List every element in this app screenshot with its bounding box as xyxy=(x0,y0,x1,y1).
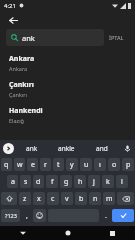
button[interactable]: z xyxy=(19,192,31,205)
button[interactable]: r xyxy=(40,158,51,171)
staticText: u xyxy=(84,160,89,170)
staticText: g xyxy=(64,177,69,187)
staticText: Ankara xyxy=(9,54,35,64)
staticText: Ankara xyxy=(9,65,28,72)
button[interactable]: a xyxy=(7,175,18,188)
staticText: l xyxy=(121,177,123,187)
button[interactable]: ank xyxy=(6,29,104,46)
button[interactable]: p xyxy=(122,158,134,171)
button[interactable]: ?123 xyxy=(1,209,20,222)
staticText: and xyxy=(96,144,108,153)
button[interactable]: e xyxy=(27,158,38,171)
staticText: k xyxy=(106,177,110,187)
button[interactable]: Voice input xyxy=(119,140,135,156)
button[interactable]: b xyxy=(75,192,87,205)
button[interactable]: h xyxy=(74,175,86,188)
button[interactable]: j xyxy=(88,175,100,188)
staticText: . xyxy=(105,211,107,221)
staticText: a xyxy=(11,177,15,187)
button[interactable]: Ankara xyxy=(0,50,135,76)
button[interactable]: Emoji xyxy=(33,209,46,222)
staticText: Hankendi xyxy=(9,106,43,116)
staticText: Çankırı xyxy=(9,91,28,98)
button[interactable]: l xyxy=(116,175,128,188)
staticText: q xyxy=(4,160,9,170)
staticText: r xyxy=(44,160,47,170)
button[interactable]: . xyxy=(101,207,110,224)
button[interactable]: g xyxy=(60,175,72,188)
button[interactable]: ı xyxy=(94,158,106,171)
button[interactable]: x xyxy=(33,192,45,205)
button[interactable]: m xyxy=(103,192,115,205)
staticText: e xyxy=(31,160,35,170)
button[interactable]: İPTAL xyxy=(104,30,129,45)
staticText: ankle xyxy=(58,144,75,153)
staticText: 4:21 xyxy=(4,2,16,10)
button[interactable]: Hankendi xyxy=(0,102,135,128)
button[interactable]: v xyxy=(61,192,73,205)
button[interactable]: o xyxy=(108,158,120,171)
button[interactable]: w xyxy=(14,158,25,171)
staticText: ı xyxy=(99,160,101,170)
button[interactable]: Backspace xyxy=(117,192,134,205)
staticText: Elazığ xyxy=(9,117,24,124)
staticText: Çankırı xyxy=(9,80,34,90)
button[interactable]: Home xyxy=(45,226,90,240)
button[interactable]: q xyxy=(1,158,12,171)
button[interactable]: d xyxy=(33,175,44,188)
button[interactable]: c xyxy=(47,192,59,205)
button[interactable]: Recents xyxy=(90,226,135,240)
staticText: d xyxy=(36,177,41,187)
button[interactable]: ankle xyxy=(49,140,84,156)
button[interactable]: k xyxy=(102,175,114,188)
staticText: z xyxy=(23,194,27,204)
button[interactable]: Search xyxy=(112,209,134,222)
staticText: İPTAL xyxy=(109,34,124,41)
staticText: m xyxy=(106,194,113,204)
staticText: j xyxy=(93,177,95,187)
staticText: y xyxy=(70,160,74,170)
staticText: o xyxy=(112,160,117,170)
button[interactable]: t xyxy=(53,158,64,171)
staticText: h xyxy=(78,177,83,187)
staticText: , xyxy=(26,211,28,221)
staticText: ?123 xyxy=(5,212,17,219)
button[interactable]: and xyxy=(84,140,119,156)
staticText: f xyxy=(51,177,54,187)
staticText: w xyxy=(17,160,23,170)
button[interactable]: f xyxy=(46,175,58,188)
staticText: c xyxy=(51,194,55,204)
staticText: s xyxy=(24,177,28,187)
staticText: n xyxy=(93,194,98,204)
staticText: ank xyxy=(22,33,35,43)
staticText: v xyxy=(65,194,69,204)
staticText: ank xyxy=(26,144,38,153)
button[interactable]: , xyxy=(22,207,31,224)
button[interactable]: ank xyxy=(14,140,49,156)
button[interactable]: Back xyxy=(6,13,20,27)
staticText: b xyxy=(79,194,84,204)
button[interactable]: Shift xyxy=(1,192,17,205)
staticText: t xyxy=(57,160,60,170)
button[interactable]: Back xyxy=(0,226,45,240)
button[interactable]: More suggestions xyxy=(3,143,14,154)
button[interactable]: u xyxy=(80,158,92,171)
button[interactable]: s xyxy=(20,175,31,188)
button[interactable]: y xyxy=(66,158,78,171)
staticText: p xyxy=(126,160,131,170)
button[interactable]: Çankırı xyxy=(0,76,135,102)
button[interactable]: n xyxy=(89,192,101,205)
staticText: x xyxy=(37,194,41,204)
